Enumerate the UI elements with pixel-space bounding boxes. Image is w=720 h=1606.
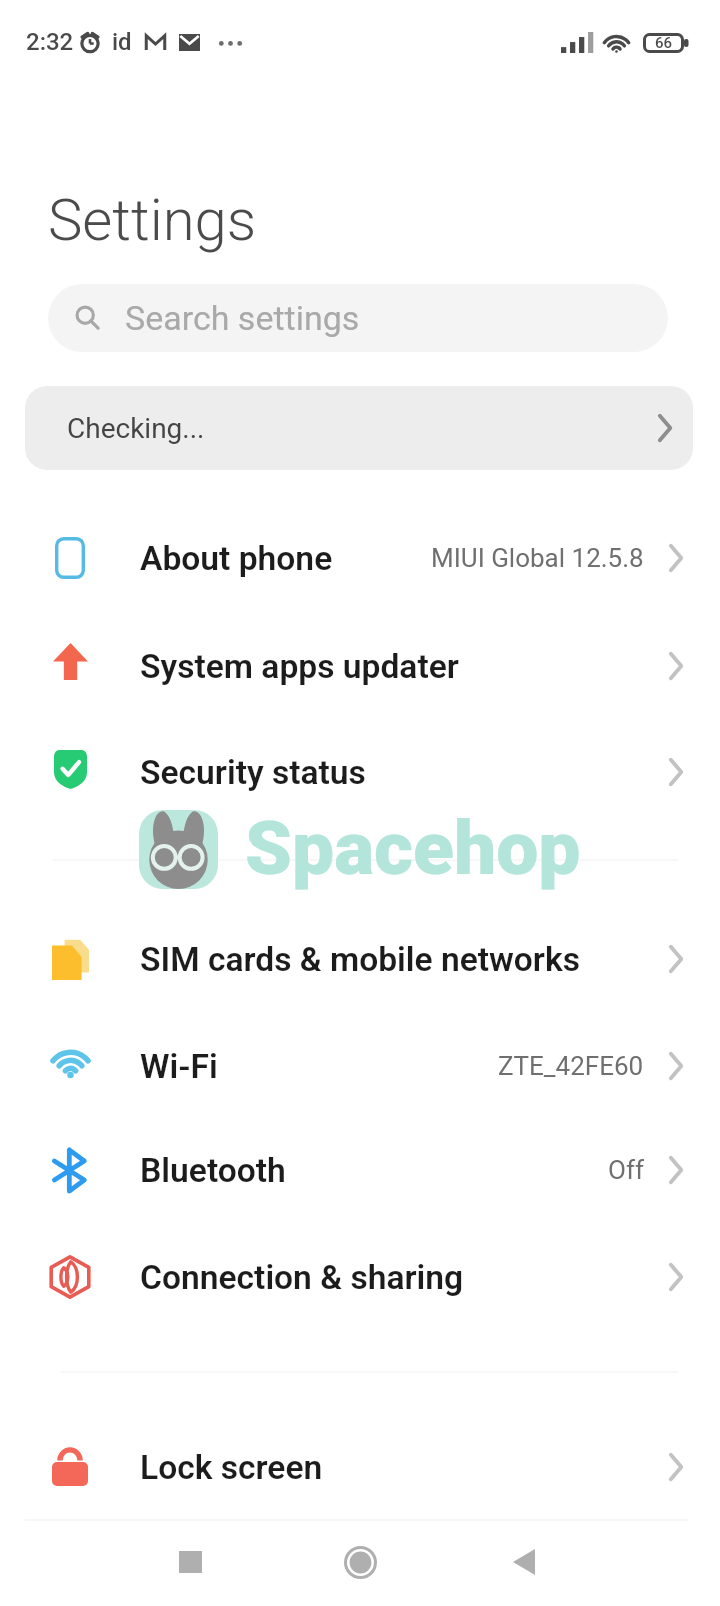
staticText: Connection & sharing — [140, 1258, 464, 1297]
button[interactable]: Back — [488, 1526, 560, 1598]
staticText: System apps updater — [140, 647, 459, 686]
button[interactable]: Wi-Fi — [0, 1013, 720, 1119]
button[interactable]: System apps updater — [0, 613, 720, 719]
button[interactable]: SIM cards & mobile networks — [0, 906, 720, 1012]
staticText: id — [112, 28, 132, 56]
staticText: MIUI Global 12.5.8 — [431, 543, 644, 573]
staticText: Spacehop — [245, 804, 581, 892]
button[interactable]: Bluetooth — [0, 1117, 720, 1223]
staticText: Search settings — [125, 298, 360, 338]
staticText: Checking... — [67, 412, 205, 445]
staticText: SIM cards & mobile networks — [140, 940, 580, 979]
staticText: Off — [608, 1155, 644, 1185]
button[interactable]: Recents — [154, 1526, 226, 1598]
staticText: 66 — [655, 34, 673, 52]
button[interactable]: Security status — [0, 719, 720, 825]
staticText: ZTE_42FE60 — [498, 1051, 644, 1081]
staticText: 2:32 — [26, 28, 74, 56]
staticText: Bluetooth — [140, 1151, 286, 1190]
staticText: Security status — [140, 753, 366, 792]
button[interactable]: Lock screen — [0, 1414, 720, 1520]
button[interactable]: About phone — [0, 505, 720, 611]
staticText: Settings — [48, 186, 257, 254]
button[interactable]: Search settings — [48, 284, 668, 352]
button[interactable]: Connection & sharing — [0, 1224, 720, 1330]
staticText: Wi-Fi — [140, 1047, 218, 1086]
staticText: Lock screen — [140, 1448, 323, 1487]
staticText: About phone — [140, 539, 333, 578]
button[interactable]: Home — [324, 1526, 396, 1598]
button[interactable]: Checking... — [25, 386, 693, 470]
